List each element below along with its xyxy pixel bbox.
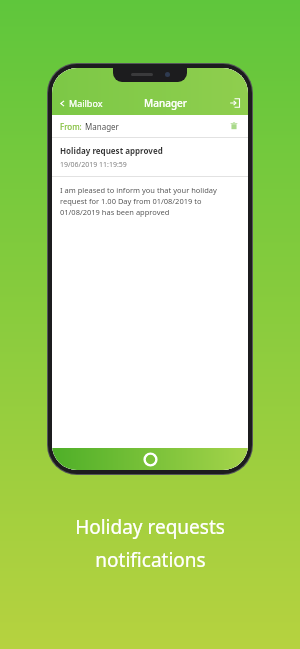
staticText: Holiday requests [75,514,225,540]
staticText: Mailbox [69,97,103,109]
button[interactable]: Delete [228,120,240,132]
staticText: 19/06/2019 11:19:59 [60,160,127,170]
staticText: I am pleased to inform you that your hol… [60,185,238,217]
staticText: notifications [95,547,206,573]
button[interactable]: Holiday request approved [52,138,248,176]
staticText: Manager [144,96,188,110]
button[interactable]: From: [52,115,248,137]
button[interactable]: Log out [222,93,248,113]
staticText: Manager [85,121,119,132]
staticText: Holiday request approved [60,145,163,156]
button[interactable]: Home [142,451,159,468]
button[interactable]: Mailbox [52,94,109,112]
staticText: From: [60,121,82,132]
